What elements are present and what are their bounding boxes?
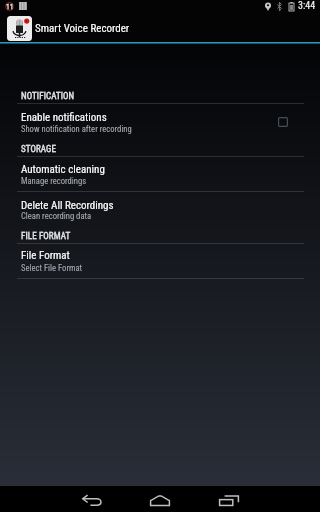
staticText: Manage recordings <box>21 176 87 186</box>
staticText: Automatic cleaning <box>21 163 105 176</box>
staticText: FILE FORMAT <box>21 231 71 242</box>
button[interactable]: Recent apps <box>206 486 252 512</box>
staticText: Show notification after recording <box>21 124 132 134</box>
staticText: 3:44 <box>298 0 316 12</box>
button[interactable] <box>0 243 320 278</box>
staticText: Enable notifications <box>21 111 107 124</box>
staticText: Smart Voice Recorder <box>35 22 130 35</box>
button[interactable]: Smart Voice Recorder <box>0 14 320 42</box>
staticText: Clean recording data <box>21 211 92 221</box>
button[interactable] <box>0 156 320 191</box>
button[interactable] <box>0 103 320 156</box>
staticText: Select File Format <box>21 263 83 273</box>
button[interactable]: Back <box>69 486 115 512</box>
button[interactable]: Home <box>137 486 183 512</box>
staticText: STORAGE <box>21 144 57 155</box>
staticText: NOTIFICATION <box>21 91 75 102</box>
staticText: File Format <box>21 249 70 262</box>
staticText: 11 <box>6 2 14 11</box>
staticText: Delete All Recordings <box>21 199 114 212</box>
button[interactable] <box>0 191 320 227</box>
button[interactable]: Enable notifications toggle <box>270 110 294 134</box>
